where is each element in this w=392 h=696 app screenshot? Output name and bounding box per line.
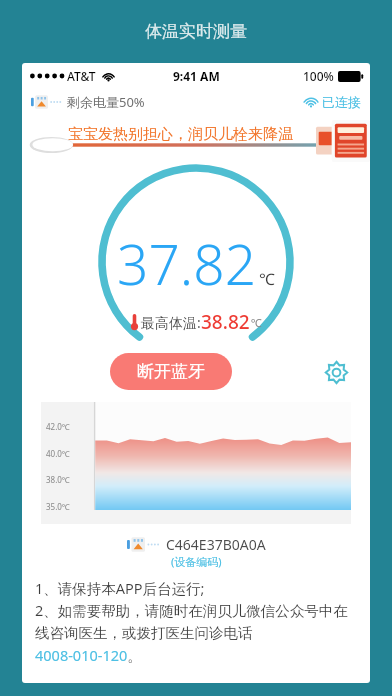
button[interactable]: 断开蓝牙 <box>110 353 232 390</box>
staticText: 宝宝发热别担心，润贝儿栓来降温 <box>68 125 293 144</box>
staticText: 35.0℃ <box>46 501 70 512</box>
button[interactable]: 1、请保持本APP后台运行; 2、如需要帮助，请随时在润贝儿微信公众号中在线咨询… <box>35 578 357 666</box>
button[interactable]: 宝宝发热别担心，润贝儿栓来降温 <box>22 116 370 166</box>
staticText: 已连接 <box>322 94 361 110</box>
staticText: ℃ <box>251 315 262 330</box>
staticText: 剩余电量50% <box>67 93 145 111</box>
button[interactable]: Settings <box>320 356 352 388</box>
staticText: 40.0℃ <box>46 448 70 459</box>
staticText: 断开蓝牙 <box>137 361 205 382</box>
staticText: 100% <box>303 68 334 84</box>
staticText: 38.82 <box>201 309 250 335</box>
staticText: ℃ <box>259 268 275 290</box>
staticText: (设备编码) <box>171 554 222 569</box>
staticText: 最高体温: <box>141 313 201 332</box>
staticText: 38.0℃ <box>46 474 70 485</box>
staticText: 体温实时测量 <box>145 21 247 42</box>
staticText: 37.82 <box>117 226 257 301</box>
staticText: C464E37B0A0A <box>166 535 266 554</box>
staticText: 9:41 AM <box>173 68 220 84</box>
staticText: 42.0℃ <box>46 421 70 432</box>
staticText: AT&T <box>67 68 96 84</box>
staticText: 1、请保持本APP后台运行; 2、如需要帮助，请随时在润贝儿微信公众号中在线咨询… <box>35 578 357 666</box>
